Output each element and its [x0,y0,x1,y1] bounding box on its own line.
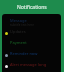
staticText: Notifications [17,4,47,11]
staticText: Reminder now [10,51,38,56]
staticText: subtitle text here [10,23,34,27]
staticText: Alert message long [10,62,47,67]
staticText: Payment [10,40,27,45]
button[interactable]: Payment [2,39,61,50]
button[interactable]: Message [2,17,61,28]
staticText: Updates [10,29,26,34]
button[interactable]: Updates [2,28,61,39]
button[interactable]: Notifications [0,0,64,14]
button[interactable]: Alert message long [2,61,61,72]
button[interactable]: Reminder now [2,50,61,61]
staticText: Message [10,18,27,23]
